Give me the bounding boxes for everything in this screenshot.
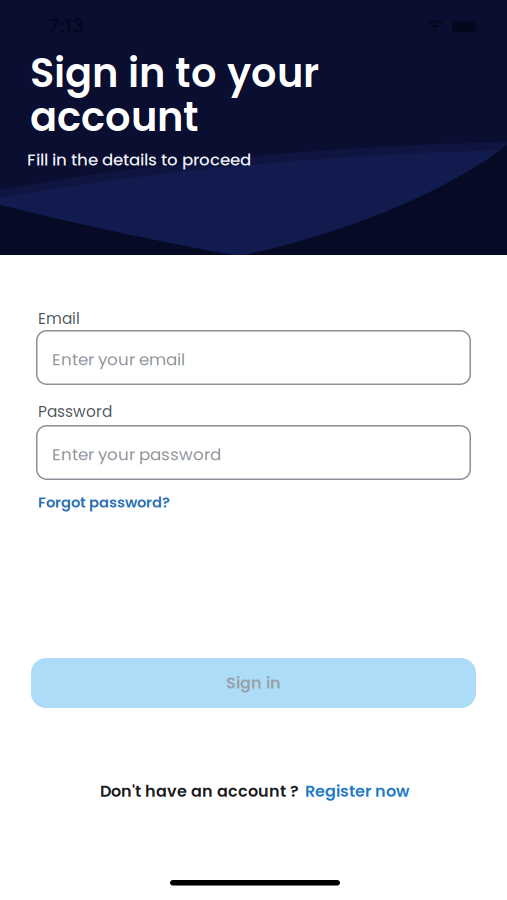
button[interactable]: Enter your email	[36, 330, 471, 385]
button[interactable]: Sign in	[31, 658, 476, 708]
staticText: Forgot password?	[38, 492, 170, 512]
staticText: Sign in	[226, 672, 281, 694]
staticText: Sign in to your	[30, 45, 319, 101]
staticText: 7:13	[48, 12, 84, 40]
button[interactable]: Enter your password	[36, 425, 471, 480]
button[interactable]: Register now	[305, 780, 410, 802]
staticText: Enter your email	[52, 348, 185, 371]
staticText: Register now	[305, 780, 410, 802]
staticText: Fill in the details to proceed	[27, 148, 251, 171]
staticText: Password	[38, 401, 112, 422]
staticText: account	[30, 89, 199, 145]
button[interactable]: Forgot password?	[38, 492, 170, 512]
staticText: Don't have an account ?	[100, 780, 299, 802]
staticText: Email	[38, 308, 80, 329]
staticText: Enter your password	[52, 443, 221, 466]
